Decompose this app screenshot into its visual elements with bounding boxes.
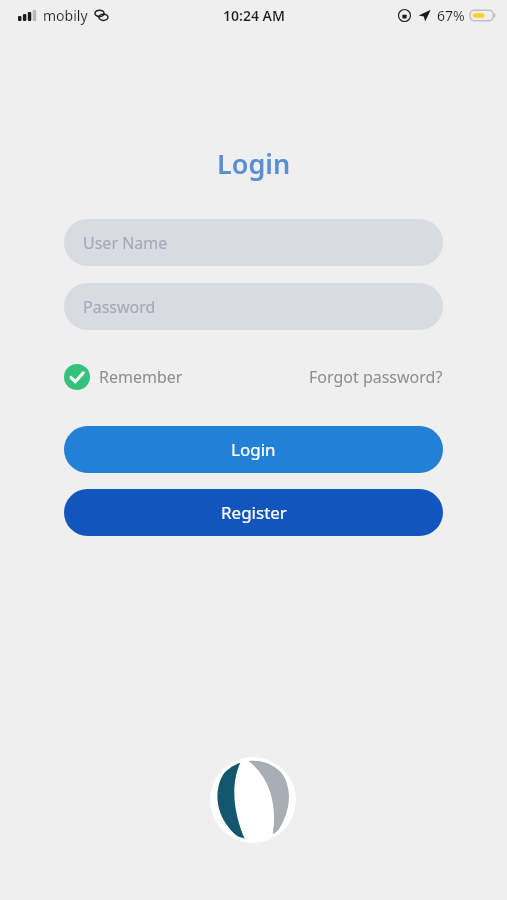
button[interactable]: Remember: [64, 360, 183, 394]
staticText: mobily: [43, 6, 88, 25]
staticText: Forgot password?: [309, 366, 443, 388]
button[interactable]: Forgot password?: [309, 362, 443, 392]
other: Location: [418, 9, 431, 22]
staticText: Password: [83, 296, 156, 318]
button[interactable]: Register: [64, 489, 443, 536]
staticText: Login: [217, 145, 291, 182]
button[interactable]: User Name: [64, 219, 443, 266]
button[interactable]: Login: [64, 426, 443, 473]
button[interactable]: Password: [64, 283, 443, 330]
other: Rotation lock: [398, 9, 411, 22]
staticText: Remember: [99, 366, 183, 388]
staticText: User Name: [83, 232, 168, 254]
staticText: 67%: [437, 6, 465, 25]
staticText: 10:24 AM: [223, 6, 285, 25]
staticText: Register: [221, 501, 287, 524]
staticText: Login: [231, 438, 276, 461]
